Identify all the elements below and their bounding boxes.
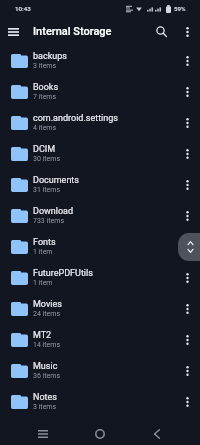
button[interactable]: Books [0,76,200,107]
button[interactable]: Documents [0,169,200,200]
button[interactable]: FuturePDFUtils [0,262,200,293]
button[interactable]: Recent apps [29,417,57,445]
button[interactable]: Back [143,417,171,445]
button[interactable]: Item options [175,142,199,166]
staticText: 31 items [33,186,61,194]
staticText: Movies [33,299,62,310]
staticText: Download [33,206,74,217]
staticText: 3 items [33,62,57,70]
staticText: 14 items [33,341,61,349]
staticText: 1 item [33,279,53,287]
button[interactable]: DCIM [0,138,200,169]
staticText: 30 items [33,155,61,163]
staticText: DCIM [33,144,56,155]
button[interactable]: Item options [175,173,199,197]
button[interactable]: Notes [0,386,200,417]
button[interactable]: Item options [175,328,199,352]
button[interactable]: Item options [175,359,199,383]
staticText: 4 items [33,124,57,132]
staticText: 7 items [33,93,57,101]
button[interactable]: More options [175,20,199,44]
staticText: Music [33,361,58,372]
staticText: 24 items [33,310,61,318]
button[interactable]: Item options [175,49,199,73]
button[interactable]: Fast scroll [178,233,200,261]
button[interactable]: Item options [175,297,199,321]
button[interactable]: Item options [175,204,199,228]
button[interactable]: Item options [175,390,199,414]
staticText: Notes [33,392,57,403]
button[interactable]: Movies [0,293,200,324]
staticText: 36 items [33,372,61,380]
button[interactable]: Item options [175,111,199,135]
button[interactable]: Search [147,18,175,45]
button[interactable]: Download [0,200,200,231]
staticText: Fonts [33,237,56,248]
staticText: Books [33,82,59,93]
staticText: com.android.settings [33,113,118,124]
staticText: MT2 [33,330,52,341]
staticText: 733 items [33,217,64,225]
button[interactable]: MT2 [0,324,200,355]
staticText: 10:43 [15,5,31,12]
button[interactable]: com.android.settings [0,107,200,138]
staticText: Documents [33,175,79,186]
button[interactable]: Item options [175,266,199,290]
staticText: FuturePDFUtils [33,268,93,279]
staticText: backups [33,51,67,62]
button[interactable]: Home [86,417,114,445]
staticText: 3 items [33,403,57,411]
staticText: 1 item [33,248,53,256]
button[interactable]: Item options [175,235,199,259]
button[interactable]: backups [0,45,200,76]
button[interactable]: Navigation menu [0,18,27,45]
staticText: Internal Storage [33,25,112,38]
button[interactable]: Fonts [0,231,200,262]
button[interactable]: Music [0,355,200,386]
staticText: 59% [174,5,186,12]
button[interactable]: Item options [175,80,199,104]
